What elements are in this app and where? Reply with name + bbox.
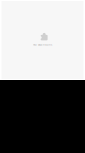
- staticText: No extensions: [33, 43, 52, 46]
